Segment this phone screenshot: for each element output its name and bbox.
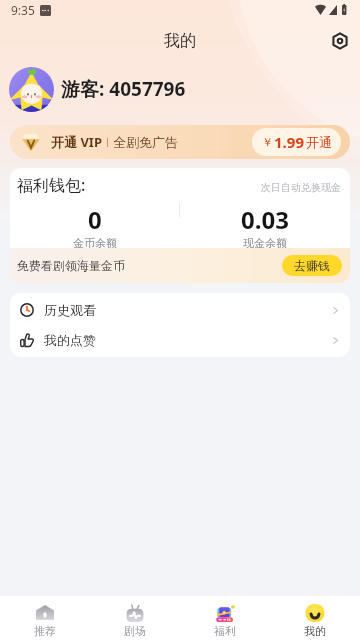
staticText: 推荐	[34, 624, 56, 638]
staticText: 0.03	[241, 203, 289, 236]
staticText: 我的	[164, 31, 196, 51]
staticText: 全剧免广告	[113, 134, 178, 150]
staticText: 去赚钱	[294, 258, 330, 273]
button[interactable]: 去赚钱	[282, 255, 342, 276]
button[interactable]: 剧场	[90, 596, 180, 640]
staticText: 剧场	[124, 624, 146, 638]
button[interactable]: 我的点赞	[10, 325, 350, 355]
button[interactable]: 开通 VIP	[10, 125, 350, 159]
staticText: 现金余额	[243, 236, 287, 248]
staticText: ￥	[262, 135, 273, 149]
staticText: 开通	[306, 134, 332, 150]
button[interactable]: 推荐	[0, 596, 90, 640]
button[interactable]: 历史观看	[10, 295, 350, 325]
staticText: 9:35	[11, 2, 35, 18]
button[interactable]: 福利	[180, 596, 270, 640]
staticText: 我的	[304, 624, 326, 638]
staticText: 免费看剧领海量金币	[17, 258, 125, 273]
staticText: 次日自动兑换现金	[261, 181, 341, 194]
staticText: 我的点赞	[44, 332, 96, 348]
staticText: 游客: 4057796	[61, 76, 186, 102]
button[interactable]: Settings	[327, 28, 353, 54]
button[interactable]: 我的	[270, 596, 360, 640]
staticText: 1.99	[274, 132, 304, 152]
staticText: 历史观看	[44, 302, 96, 318]
staticText: 福利	[214, 624, 236, 638]
staticText: 0	[88, 203, 102, 236]
staticText: 金币余额	[73, 236, 117, 248]
staticText: 福利钱包:	[17, 174, 86, 196]
staticText: 开通 VIP	[51, 133, 102, 151]
